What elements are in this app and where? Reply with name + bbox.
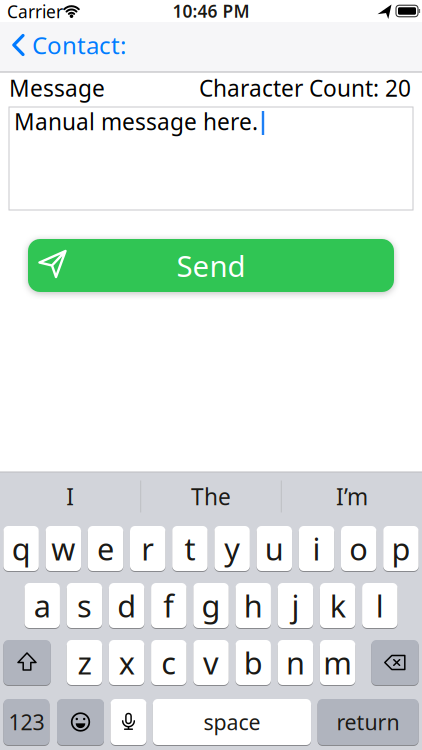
staticText: d — [117, 585, 136, 626]
button[interactable]: I — [1, 474, 139, 519]
button[interactable]: n — [278, 640, 313, 685]
staticText: q — [12, 528, 31, 569]
staticText: t — [184, 528, 195, 569]
button[interactable]: k — [320, 583, 355, 628]
button[interactable]: m — [320, 640, 355, 685]
button[interactable]: I’m — [283, 474, 421, 519]
button[interactable]: space — [153, 699, 311, 745]
button[interactable]: e — [88, 526, 123, 571]
button[interactable]: g — [193, 583, 229, 628]
button[interactable]: The — [142, 474, 280, 519]
staticText: l — [376, 585, 384, 626]
staticText: n — [286, 642, 305, 683]
staticText: c — [161, 642, 176, 683]
staticText: 123 — [8, 708, 44, 736]
button[interactable]: h — [235, 583, 271, 628]
staticText: p — [391, 528, 410, 569]
staticText: m — [323, 642, 352, 683]
button[interactable]: a — [24, 583, 60, 628]
button[interactable]: Dictate — [110, 699, 146, 745]
staticText: Carrier — [7, 0, 63, 23]
staticText: I’m — [336, 481, 368, 511]
staticText: o — [349, 528, 368, 569]
button[interactable]: f — [151, 583, 187, 628]
staticText: return — [337, 708, 400, 736]
button[interactable]: q — [3, 526, 39, 571]
button[interactable]: d — [109, 583, 144, 628]
staticText: f — [163, 585, 174, 626]
button[interactable]: b — [235, 640, 271, 685]
staticText: x — [119, 642, 135, 683]
staticText: u — [265, 528, 284, 569]
staticText: 10:46 PM — [172, 0, 249, 22]
staticText: Manual message here. — [14, 106, 258, 136]
staticText: b — [244, 642, 263, 683]
button[interactable]: t — [172, 526, 208, 571]
button[interactable]: Delete — [371, 640, 419, 685]
staticText: I — [66, 481, 74, 511]
staticText: y — [224, 528, 240, 569]
button[interactable]: r — [130, 526, 165, 571]
button[interactable]: u — [257, 526, 292, 571]
staticText: Contact: — [32, 29, 126, 61]
button[interactable]: return — [318, 699, 419, 745]
staticText: a — [34, 585, 51, 626]
button[interactable]: l — [362, 583, 398, 628]
staticText: The — [191, 481, 231, 511]
button[interactable]: o — [341, 526, 376, 571]
button[interactable]: Send — [28, 239, 394, 292]
staticText: i — [312, 528, 320, 569]
staticText: e — [97, 528, 114, 569]
staticText: Send — [176, 246, 245, 285]
staticText: h — [244, 585, 263, 626]
staticText: Character Count: 20 — [199, 73, 411, 103]
button[interactable]: p — [383, 526, 419, 571]
button[interactable]: j — [278, 583, 313, 628]
button[interactable]: v — [193, 640, 229, 685]
button[interactable]: y — [214, 526, 250, 571]
staticText: w — [51, 528, 75, 569]
button[interactable]: Back — [12, 29, 126, 61]
button[interactable]: s — [67, 583, 102, 628]
staticText: Message — [9, 73, 105, 103]
button[interactable]: c — [151, 640, 187, 685]
button[interactable]: Numbers — [3, 699, 49, 745]
staticText: s — [77, 585, 92, 626]
button[interactable]: i — [299, 526, 334, 571]
staticText: space — [203, 708, 260, 736]
button[interactable]: x — [109, 640, 144, 685]
button[interactable]: w — [46, 526, 81, 571]
staticText: g — [201, 585, 220, 626]
staticText: j — [291, 585, 299, 626]
staticText: r — [141, 528, 154, 569]
button[interactable]: Shift — [3, 640, 51, 685]
staticText: z — [77, 642, 91, 683]
staticText: v — [203, 642, 219, 683]
button[interactable]: Emoji — [57, 699, 104, 745]
button[interactable]: z — [67, 640, 102, 685]
staticText: k — [330, 585, 346, 626]
